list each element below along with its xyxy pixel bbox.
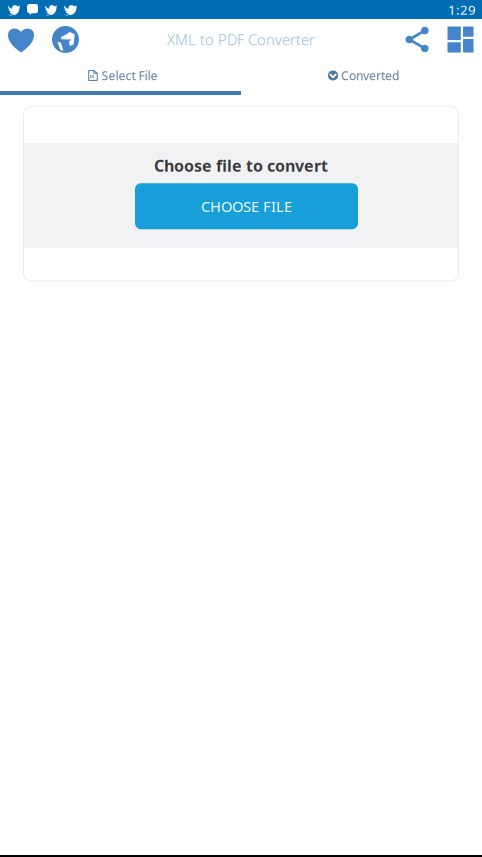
staticText: CHOOSE FILE <box>201 196 292 216</box>
staticText: Converted <box>341 67 399 83</box>
staticText: 1:29 <box>448 1 476 18</box>
button[interactable]: CHOOSE FILE <box>135 183 358 229</box>
button[interactable]: Apps <box>441 19 480 60</box>
button[interactable]: Language <box>40 19 91 60</box>
staticText: Select File <box>101 67 157 83</box>
staticText: Choose file to convert <box>154 155 328 176</box>
button[interactable]: Share <box>393 19 441 60</box>
button[interactable]: Favorites <box>2 19 40 60</box>
button[interactable]: Select File <box>0 60 241 91</box>
staticText: XML to PDF Converter <box>167 30 315 49</box>
button[interactable]: Converted <box>241 60 482 91</box>
